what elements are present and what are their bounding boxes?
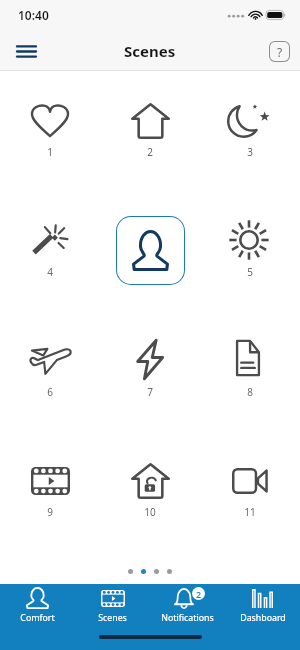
- button[interactable]: Scene 12: [219, 456, 281, 506]
- staticText: Dashboard: [240, 612, 286, 624]
- button[interactable]: Scene 7: [19, 336, 81, 386]
- staticText: Comfort: [20, 612, 55, 624]
- button[interactable]: Dashboard: [225, 584, 300, 650]
- button[interactable]: Scene 2: [119, 96, 181, 146]
- button[interactable]: Scene 1: [19, 96, 81, 146]
- staticText: 10: [144, 505, 156, 519]
- staticText: 5: [247, 265, 253, 279]
- staticText: 8: [247, 385, 253, 399]
- staticText: Notifications: [161, 612, 214, 624]
- button[interactable]: Scene 5 selected: [117, 217, 184, 284]
- button[interactable]: Scene 11: [119, 456, 181, 506]
- staticText: 9: [47, 505, 53, 519]
- staticText: Scenes: [124, 41, 176, 61]
- button[interactable]: Scenes: [75, 584, 150, 650]
- staticText: 11: [244, 505, 256, 519]
- staticText: 4: [47, 265, 53, 279]
- button[interactable]: Comfort: [0, 584, 75, 650]
- button[interactable]: Scene 9: [219, 336, 281, 386]
- button[interactable]: 2: [150, 584, 225, 650]
- button[interactable]: Scene 6: [219, 216, 281, 266]
- button[interactable]: Help: [268, 40, 290, 62]
- staticText: 7: [147, 385, 153, 399]
- staticText: 3: [247, 145, 253, 159]
- staticText: 1: [47, 145, 53, 159]
- button[interactable]: Scene 4: [19, 216, 81, 266]
- staticText: ?: [277, 44, 283, 60]
- staticText: 6: [47, 385, 53, 399]
- staticText: 2: [196, 588, 202, 600]
- staticText: 2: [147, 145, 153, 159]
- button[interactable]: Menu: [8, 33, 44, 69]
- staticText: Scenes: [98, 612, 127, 624]
- button[interactable]: Scene 10: [19, 456, 81, 506]
- staticText: 10:40: [18, 7, 49, 23]
- button[interactable]: Scene 3: [219, 96, 281, 146]
- button[interactable]: Scene 8: [119, 336, 181, 386]
